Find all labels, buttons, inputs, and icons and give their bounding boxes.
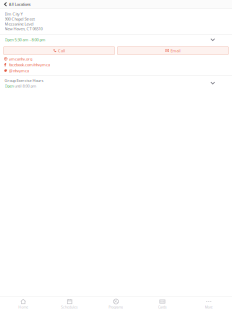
staticText: Programs: [108, 305, 123, 309]
staticText: All Locations: [9, 2, 31, 7]
button[interactable]: All Locations: [0, 0, 36, 8]
button[interactable]: Email: [117, 47, 228, 55]
staticText: Open 5:30 am - 8:00 pm: [4, 37, 45, 42]
button[interactable]: Call: [3, 47, 115, 55]
button[interactable]: Open 5:30 am - 8:00 pm: [0, 35, 232, 47]
staticText: Elm City Y: [4, 12, 22, 16]
button[interactable]: Home: [0, 297, 46, 310]
button[interactable]: facebook.com/nhvymca: [4, 62, 227, 67]
staticText: Schedules: [61, 305, 78, 309]
staticText: until 8:00 pm: [13, 83, 36, 88]
staticText: More: [205, 305, 213, 309]
staticText: Group Exercise Hours: [4, 78, 43, 83]
staticText: 900 Chapel Street: [4, 16, 34, 21]
staticText: Cards: [158, 305, 167, 309]
staticText: Email: [170, 48, 180, 53]
button[interactable]: Schedules: [46, 297, 93, 310]
staticText: @nhvymca: [9, 68, 29, 73]
staticText: Call: [58, 48, 65, 53]
staticText: Mezzanine Level: [4, 21, 33, 26]
button[interactable]: More: [186, 297, 232, 310]
staticText: New Haven, CT 06510: [4, 26, 42, 31]
staticText: Open: [4, 83, 13, 88]
button[interactable]: Programs: [93, 297, 139, 310]
staticText: Home: [18, 305, 28, 309]
button[interactable]: @nhvymca: [4, 68, 227, 73]
button[interactable]: ymcanhv.org: [4, 56, 227, 61]
staticText: facebook.com/nhvymca: [9, 62, 50, 67]
button[interactable]: Group Exercise Hours: [0, 75, 232, 91]
button[interactable]: Cards: [139, 297, 186, 310]
staticText: ymcanhv.org: [9, 56, 32, 61]
